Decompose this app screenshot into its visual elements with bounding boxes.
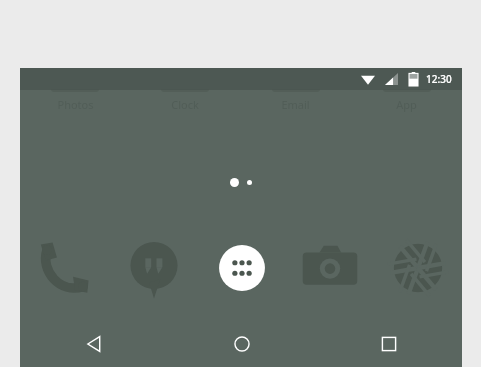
button[interactable]: Phone (20, 228, 109, 308)
staticText: 12:30 (426, 72, 452, 86)
button[interactable]: Home (168, 321, 315, 367)
other: Wi-Fi (361, 73, 375, 85)
button[interactable]: Recents (315, 321, 462, 367)
other: Cellular signal (385, 73, 398, 85)
button[interactable]: Camera (286, 228, 374, 308)
other: Battery (409, 72, 418, 86)
button[interactable]: Apps (198, 228, 286, 308)
button[interactable]: Hangouts (109, 228, 198, 308)
button[interactable]: Back (20, 321, 168, 367)
button[interactable]: Aperture (374, 228, 462, 308)
